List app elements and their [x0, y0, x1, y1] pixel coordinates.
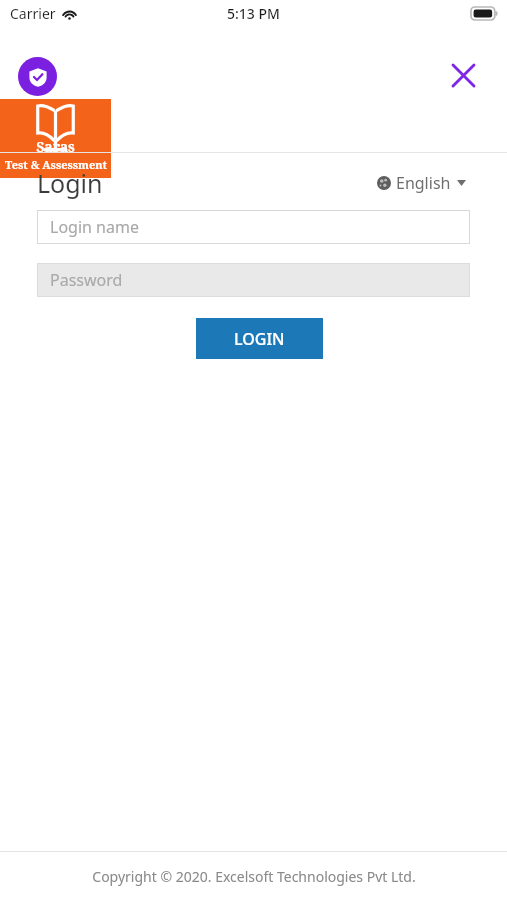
- staticText: Login name: [50, 216, 139, 238]
- staticText: Test & Assessment: [5, 157, 107, 172]
- button[interactable]: Close: [440, 52, 486, 98]
- staticText: LOGIN: [234, 328, 285, 350]
- staticText: Password: [50, 269, 123, 291]
- staticText: Saras: [36, 137, 75, 156]
- staticText: Login: [37, 166, 103, 200]
- button[interactable]: LOGIN: [196, 318, 323, 359]
- staticText: Carrier: [10, 4, 56, 23]
- button[interactable]: English: [373, 168, 470, 198]
- staticText: English: [396, 172, 451, 194]
- button[interactable]: Secure: [18, 57, 57, 96]
- button[interactable]: Login name: [37, 210, 470, 244]
- staticText: 5:13 PM: [227, 4, 280, 23]
- staticText: Copyright © 2020. Excelsoft Technologies…: [92, 867, 416, 886]
- button[interactable]: Password: [37, 263, 470, 297]
- button[interactable]: Saras Test and Assessment: [0, 99, 111, 178]
